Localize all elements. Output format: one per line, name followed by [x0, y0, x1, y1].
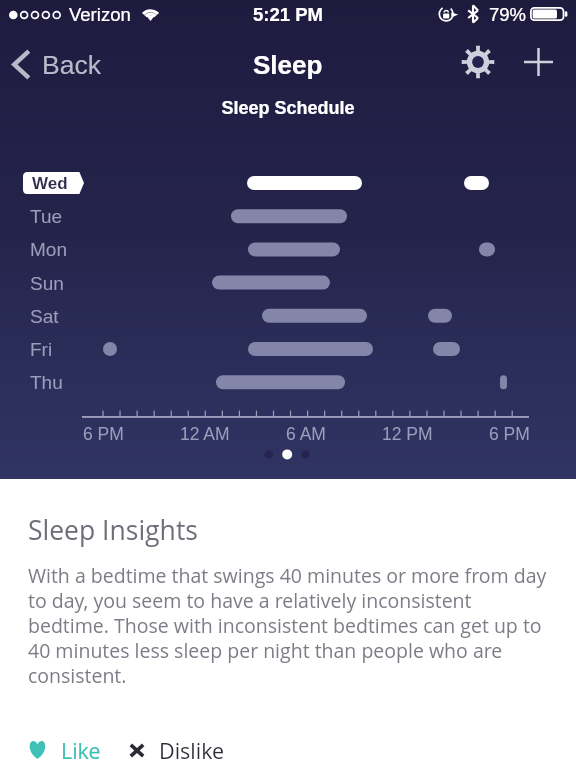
staticText: Tue	[30, 206, 63, 227]
staticText: Wed	[32, 174, 68, 193]
staticText: 6 PM	[489, 424, 530, 444]
staticText: Sleep Insights	[28, 512, 198, 548]
button[interactable]: Settings	[452, 36, 504, 88]
staticText: 5:21 PM	[0, 4, 576, 25]
button[interactable]: Like	[0, 729, 119, 771]
button[interactable]: Back	[0, 42, 115, 87]
staticText: Sleep Schedule	[0, 98, 576, 118]
staticText: 6 AM	[286, 424, 326, 444]
staticText: Sat	[30, 306, 59, 327]
staticText: Thu	[30, 372, 63, 393]
staticText: 12 AM	[180, 424, 230, 444]
staticText: Sun	[30, 273, 64, 294]
staticText: 79%	[489, 4, 527, 25]
staticText: Verizon	[69, 4, 131, 25]
staticText: Sleep	[253, 50, 323, 79]
staticText: 6 PM	[83, 424, 124, 444]
staticText: With a bedtime that swings 40 minutes or…	[28, 562, 554, 688]
staticText: Like	[61, 736, 101, 765]
button[interactable]: Add	[512, 36, 564, 88]
staticText: Back	[42, 50, 101, 80]
staticText: Mon	[30, 239, 67, 260]
staticText: Fri	[30, 339, 53, 360]
staticText: 12 PM	[382, 424, 433, 444]
button[interactable]: Dislike	[119, 729, 241, 771]
staticText: Dislike	[159, 736, 225, 765]
